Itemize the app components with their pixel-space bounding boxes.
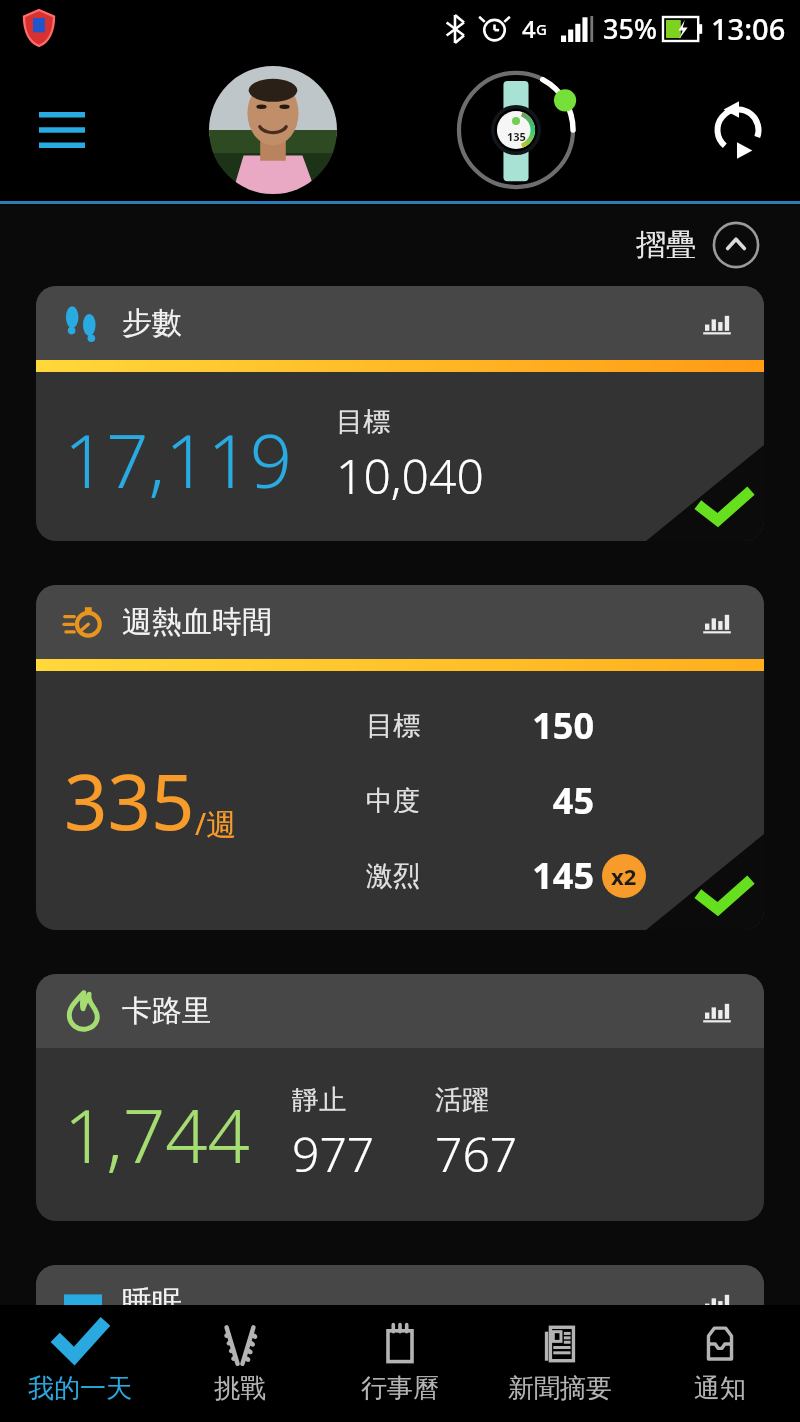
staticText: 靜止 xyxy=(292,1083,346,1117)
staticText: 767 xyxy=(435,1121,518,1186)
button[interactable]: 睡眠 xyxy=(36,1265,764,1339)
staticText: 135 xyxy=(507,129,526,144)
button[interactable]: 卡路里 xyxy=(36,974,764,1221)
button[interactable]: Menu xyxy=(24,92,100,168)
staticText: 週熱血時間 xyxy=(122,603,272,641)
button[interactable]: 行事曆 xyxy=(320,1305,480,1422)
button[interactable]: Chart xyxy=(688,1273,746,1331)
button[interactable]: Chart xyxy=(688,294,746,352)
staticText: 17,119 xyxy=(64,409,292,510)
button[interactable]: 挑戰 xyxy=(160,1305,320,1422)
staticText: 145 xyxy=(496,851,594,900)
staticText: 13:06 xyxy=(711,9,786,48)
button[interactable]: 摺疊 xyxy=(636,221,760,269)
button[interactable]: 週熱血時間 xyxy=(36,585,764,930)
staticText: 335 xyxy=(64,749,195,853)
staticText: 睡眠 xyxy=(122,1283,182,1321)
staticText: 行事曆 xyxy=(361,1372,439,1405)
button[interactable]: 新聞摘要 xyxy=(480,1305,640,1422)
staticText: 挑戰 xyxy=(214,1372,266,1405)
button[interactable]: 步數 xyxy=(36,286,764,541)
button[interactable]: Sync xyxy=(698,90,778,170)
staticText: 977 xyxy=(292,1121,375,1186)
button[interactable]: 我的一天 xyxy=(0,1305,160,1422)
staticText: /週 xyxy=(195,803,237,844)
staticText: 通知 xyxy=(694,1372,746,1405)
button[interactable]: 通知 xyxy=(640,1305,800,1422)
staticText: 目標 xyxy=(366,709,420,743)
staticText: 我的一天 xyxy=(28,1372,132,1405)
staticText: 4 xyxy=(522,12,536,45)
staticText: x2 xyxy=(611,861,637,891)
staticText: 摺疊 xyxy=(636,226,696,264)
button[interactable]: Profile xyxy=(209,66,337,194)
button[interactable]: Chart xyxy=(688,982,746,1040)
staticText: 活躍 xyxy=(435,1083,489,1117)
staticText: G xyxy=(536,19,547,39)
staticText: 步數 xyxy=(122,304,182,342)
staticText: 35% xyxy=(603,10,657,47)
staticText: 150 xyxy=(496,701,594,750)
staticText: 中度 xyxy=(366,784,420,818)
staticText: 10,040 xyxy=(336,443,484,508)
staticText: 目標 xyxy=(336,405,390,439)
staticText: 1,744 xyxy=(64,1084,250,1185)
staticText: 新聞摘要 xyxy=(508,1372,612,1405)
button[interactable]: Device xyxy=(454,68,578,192)
staticText: 45 xyxy=(496,776,594,825)
staticText: 激烈 xyxy=(366,859,420,893)
button[interactable]: Chart xyxy=(688,593,746,651)
staticText: 卡路里 xyxy=(122,992,212,1030)
